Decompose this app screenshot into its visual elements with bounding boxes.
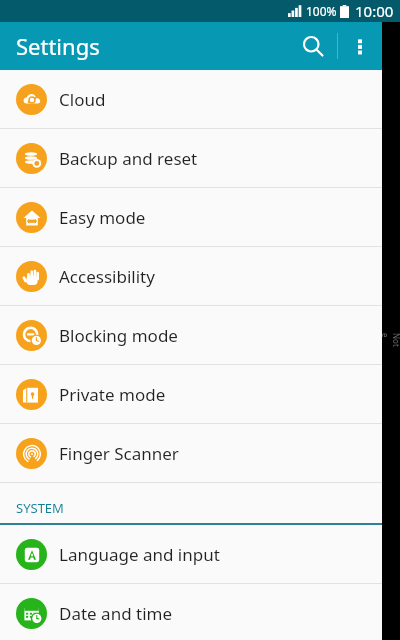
button[interactable]: Easy mode	[0, 188, 382, 246]
button[interactable]: Backup and reset	[0, 129, 382, 187]
staticText: 10:00	[355, 1, 394, 21]
button[interactable]: Private mode	[0, 365, 382, 423]
staticText: Easy mode	[59, 206, 146, 229]
button[interactable]: Finger Scanner	[0, 424, 382, 482]
staticText: Blocking mode	[59, 324, 178, 347]
staticText: Galaxy Note Edge	[358, 333, 400, 351]
staticText: 100%	[306, 3, 337, 19]
button[interactable]: Search	[289, 22, 337, 70]
staticText: Language and input	[59, 543, 220, 566]
staticText: Settings	[16, 31, 100, 61]
button[interactable]: More options	[338, 24, 382, 68]
button[interactable]: Date and time	[0, 584, 382, 640]
staticText: Finger Scanner	[59, 442, 179, 465]
button[interactable]: Accessibility	[0, 247, 382, 305]
staticText: Backup and reset	[59, 147, 198, 170]
staticText: Accessibility	[59, 265, 155, 288]
button[interactable]: Blocking mode	[0, 306, 382, 364]
staticText: Date and time	[59, 602, 173, 625]
staticText: SYSTEM	[16, 499, 64, 517]
button[interactable]: Language and input	[0, 525, 382, 583]
staticText: Private mode	[59, 383, 166, 406]
button[interactable]: Cloud	[0, 70, 382, 128]
staticText: Cloud	[59, 88, 106, 111]
